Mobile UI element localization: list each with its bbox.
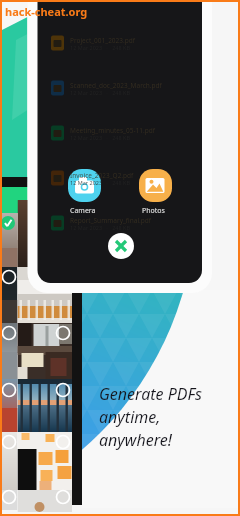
staticText: hack-cheat.org bbox=[5, 4, 88, 19]
staticText: Meeting_minutes_05-11.pdf bbox=[70, 126, 155, 135]
staticText: Invoice_2023_Q2.pdf bbox=[70, 171, 134, 180]
staticText: Camera bbox=[70, 206, 96, 216]
button[interactable]: Generate PDFs bbox=[99, 383, 202, 405]
staticText: Report_Summary_final.pdf bbox=[70, 216, 152, 225]
staticText: 12 Mar 2023 · 248 KB bbox=[70, 179, 130, 186]
staticText: Generate PDFs bbox=[99, 383, 202, 405]
staticText: Scanned_doc_2023_March.pdf bbox=[70, 81, 162, 90]
button[interactable]: anywhere! bbox=[99, 429, 172, 451]
staticText: Project_001_2023.pdf bbox=[70, 36, 136, 45]
staticText: anywhere! bbox=[99, 429, 172, 451]
staticText: anytime, bbox=[99, 406, 161, 428]
staticText: Photos bbox=[142, 206, 165, 216]
button[interactable]: anytime, bbox=[99, 406, 161, 428]
